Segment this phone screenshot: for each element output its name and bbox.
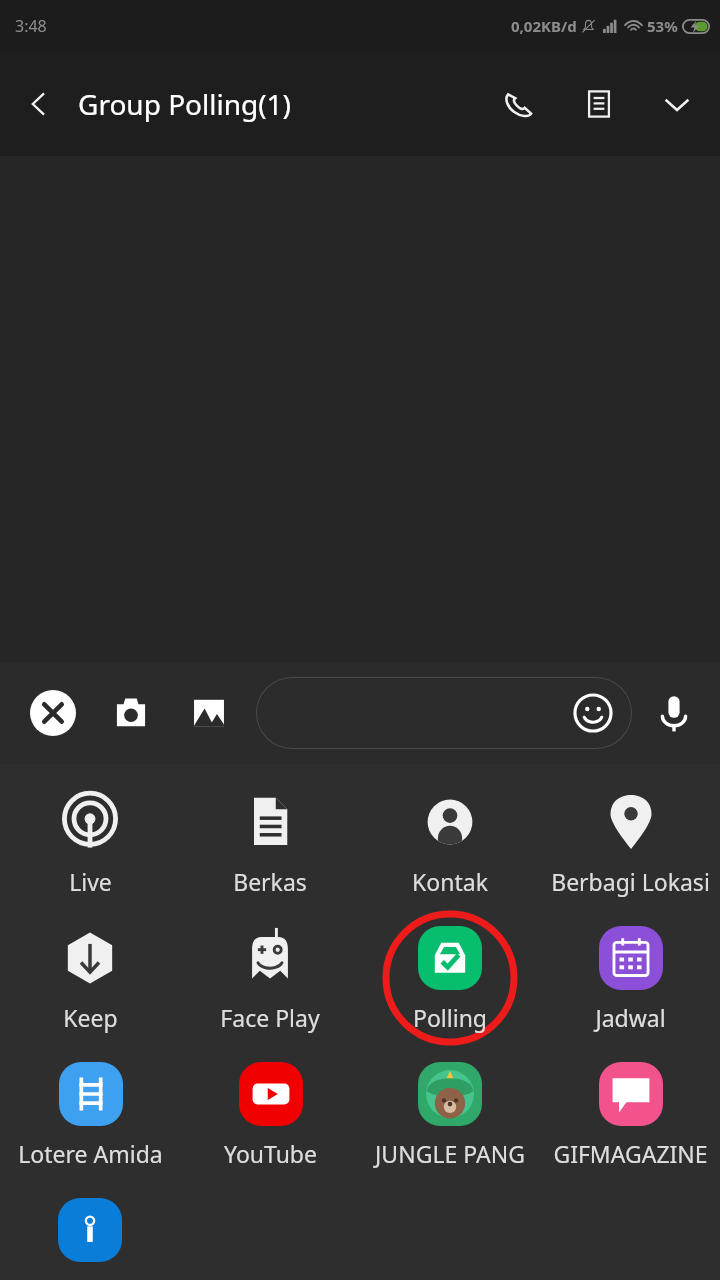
button[interactable]: Voice message bbox=[642, 681, 706, 745]
staticText: Keep bbox=[63, 1002, 118, 1033]
staticText: YouTube bbox=[224, 1138, 317, 1169]
button[interactable]: Kontak bbox=[360, 776, 540, 912]
button[interactable]: More options bbox=[650, 77, 704, 131]
staticText: Live bbox=[69, 866, 112, 897]
button[interactable]: Lotere Amida bbox=[0, 1048, 180, 1184]
button[interactable]: Camera bbox=[100, 682, 162, 744]
staticText: Group Polling(1) bbox=[78, 85, 292, 123]
staticText: 0,02KB/d bbox=[511, 16, 577, 36]
button[interactable]: Berbagi Lokasi bbox=[540, 776, 720, 912]
button[interactable]: GIFMAGAZINE bbox=[540, 1048, 720, 1184]
button[interactable]: Live bbox=[0, 776, 180, 912]
staticText: Polling bbox=[413, 1002, 487, 1033]
button[interactable]: Tenor GIFs bbox=[0, 1184, 180, 1280]
button[interactable]: JUNGLE PANG bbox=[360, 1048, 540, 1184]
staticText: 3:48 bbox=[15, 15, 47, 37]
button[interactable]: Jadwal bbox=[540, 912, 720, 1048]
button[interactable]: Back bbox=[16, 81, 62, 127]
staticText: Berbagi Lokasi bbox=[551, 866, 710, 897]
staticText: JUNGLE PANG bbox=[375, 1138, 525, 1169]
button[interactable]: Keep bbox=[0, 912, 180, 1048]
button[interactable]: Gallery bbox=[178, 682, 240, 744]
staticText: 53% bbox=[647, 16, 678, 36]
button[interactable]: Call bbox=[492, 77, 546, 131]
staticText: Jadwal bbox=[595, 1002, 666, 1033]
button[interactable]: Emoji bbox=[566, 686, 620, 740]
button[interactable]: Notes bbox=[572, 77, 626, 131]
button[interactable]: Close attachments bbox=[22, 682, 84, 744]
staticText: Berkas bbox=[233, 866, 307, 897]
staticText: Lotere Amida bbox=[18, 1138, 163, 1169]
staticText: Face Play bbox=[220, 1002, 320, 1033]
button[interactable]: YouTube bbox=[180, 1048, 360, 1184]
staticText: GIFMAGAZINE bbox=[553, 1138, 708, 1169]
staticText: Kontak bbox=[412, 866, 488, 897]
button[interactable]: Face Play bbox=[180, 912, 360, 1048]
button[interactable]: Emoji bbox=[256, 677, 632, 749]
button[interactable]: Berkas bbox=[180, 776, 360, 912]
button[interactable]: Polling bbox=[360, 912, 540, 1048]
